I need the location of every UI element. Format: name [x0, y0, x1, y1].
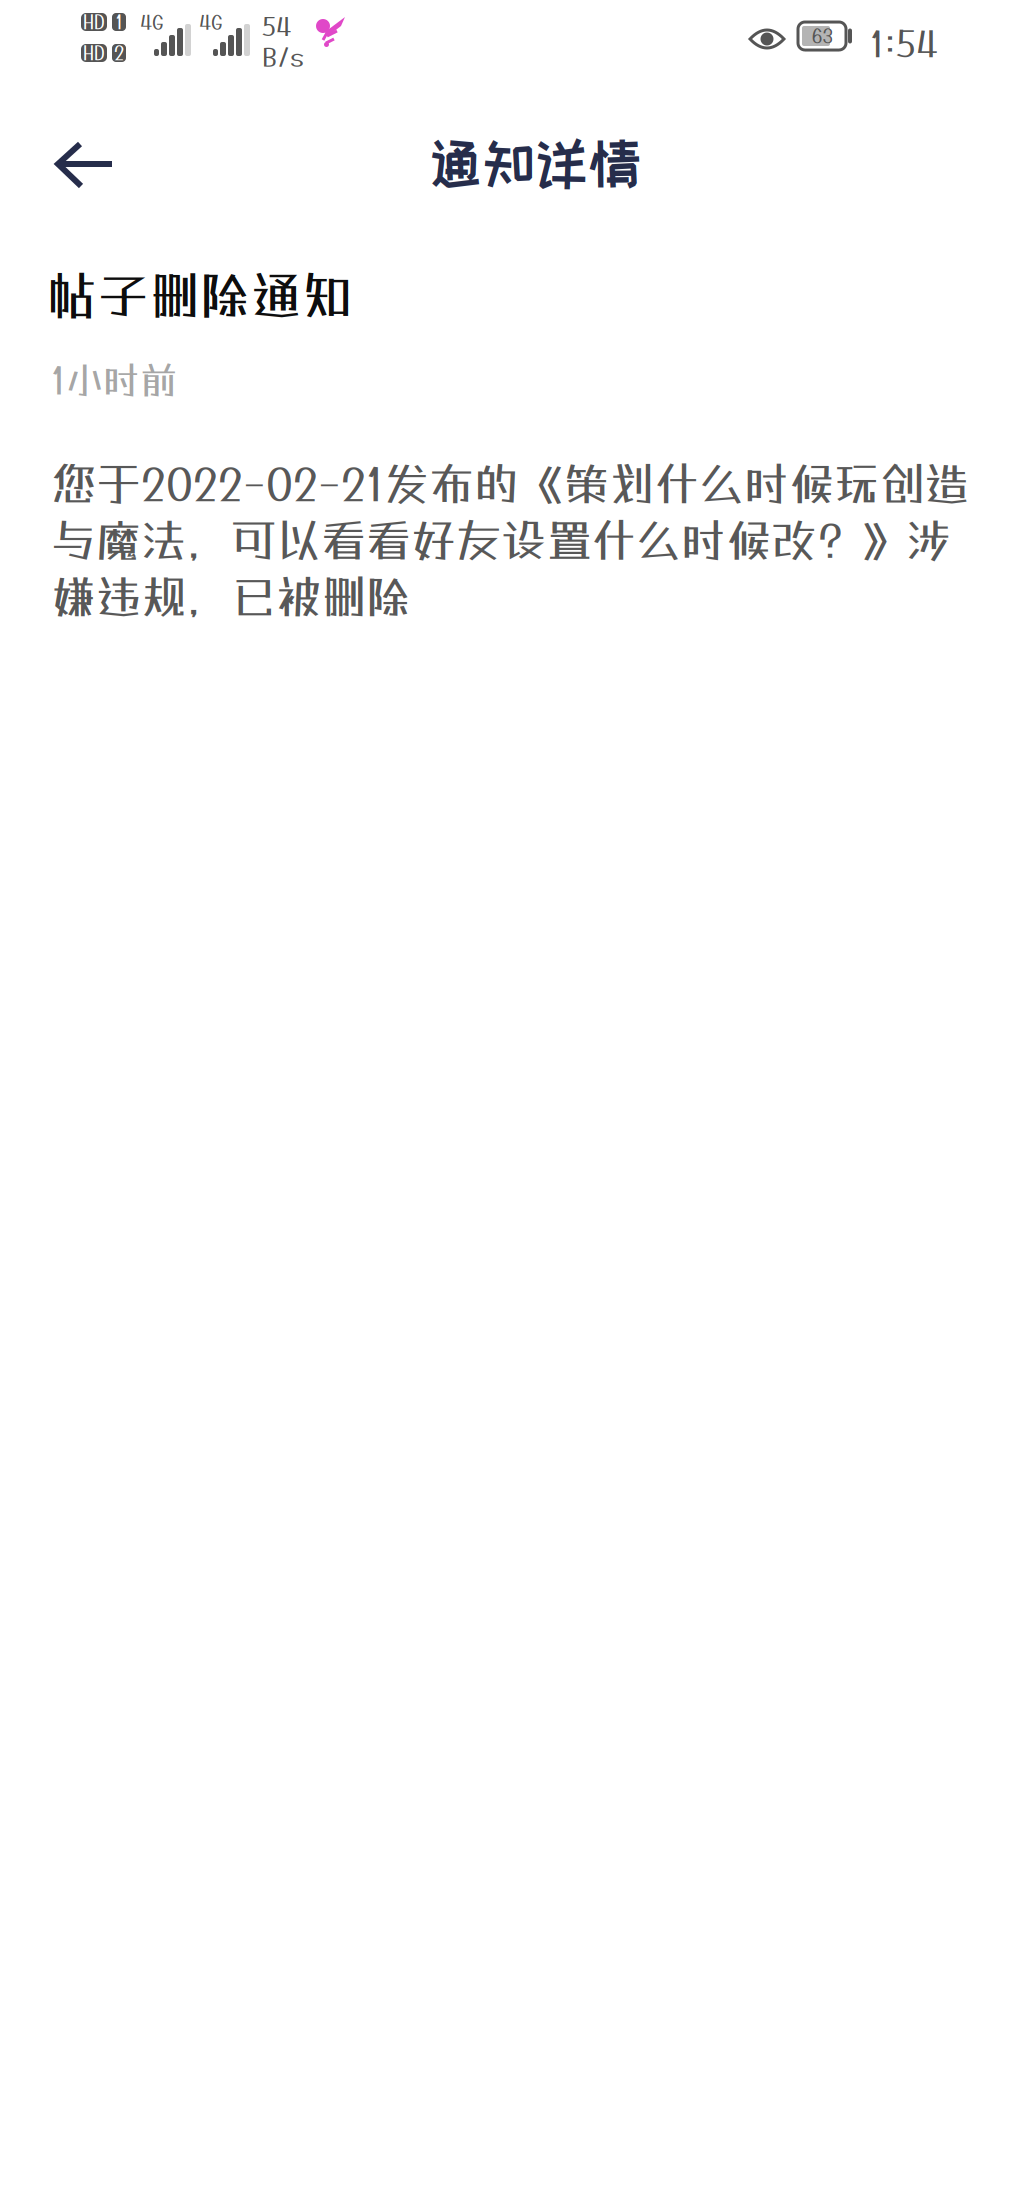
- staticText: 帖子删除通知: [47, 265, 353, 325]
- staticText: 63: [811, 25, 832, 47]
- staticText: 4G: [199, 10, 223, 34]
- staticText: 通知详情: [429, 134, 641, 191]
- staticText: 1:54: [870, 22, 938, 64]
- staticText: 您于2022-02-21发布的《策划什么时候玩创造与魔法，可以看看好友设置什么时…: [51, 457, 969, 623]
- staticText: 1: [115, 11, 122, 33]
- staticText: 1小时前: [51, 358, 177, 402]
- staticText: HD: [83, 11, 105, 33]
- staticText: 2: [114, 42, 124, 64]
- staticText: 54: [262, 11, 291, 41]
- button[interactable]: Back: [32, 117, 136, 213]
- staticText: 4G: [140, 10, 164, 34]
- staticText: HD: [83, 42, 105, 64]
- staticText: B/s: [262, 42, 304, 72]
